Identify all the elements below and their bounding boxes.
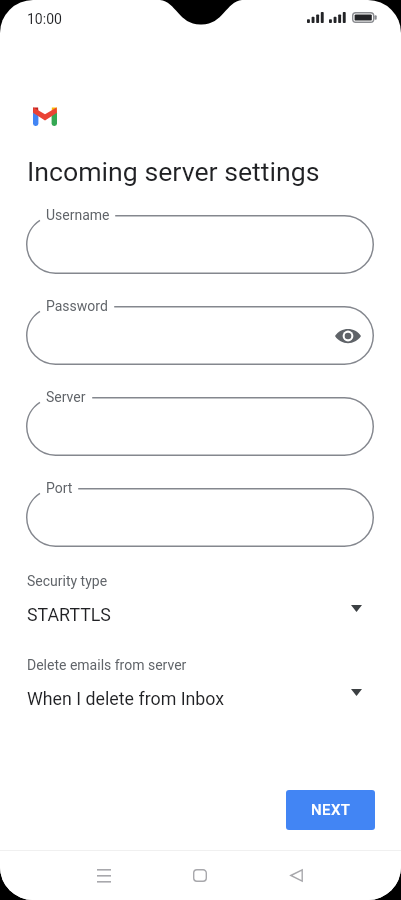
staticText: Port — [46, 480, 73, 496]
button[interactable]: Show password — [332, 320, 364, 352]
staticText: Username — [46, 207, 110, 223]
button[interactable]: Delete emails from server — [0, 654, 401, 716]
button[interactable]: Recent apps — [80, 851, 128, 900]
staticText: 10:00 — [27, 11, 62, 27]
button[interactable]: Port — [26, 488, 374, 547]
staticText: Password — [46, 298, 108, 314]
button[interactable]: Server — [26, 397, 374, 456]
staticText: When I delete from Inbox — [27, 688, 225, 709]
button[interactable]: Username — [26, 215, 374, 274]
staticText: Incoming server settings — [27, 156, 320, 187]
button[interactable]: Password — [26, 306, 374, 365]
button[interactable]: Back — [272, 851, 320, 900]
button[interactable]: NEXT — [286, 790, 375, 830]
button[interactable]: Home — [176, 851, 224, 900]
staticText: Security type — [27, 573, 108, 589]
staticText: STARTTLS — [27, 604, 111, 625]
staticText: Server — [46, 389, 86, 405]
staticText: NEXT — [311, 801, 351, 819]
staticText: Delete emails from server — [27, 657, 187, 673]
button[interactable]: Security type — [0, 570, 401, 632]
